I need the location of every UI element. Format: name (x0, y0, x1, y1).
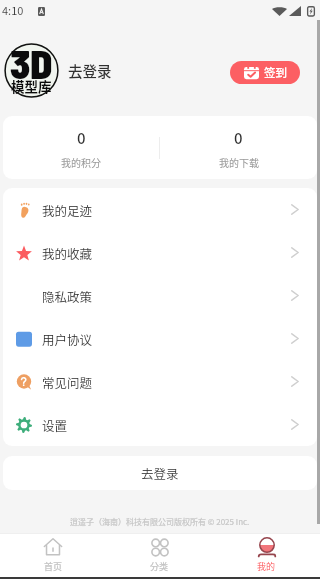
button[interactable]: 去登录 (68, 60, 112, 81)
staticText: 分类 (150, 560, 169, 573)
staticText: 常见问题 (42, 373, 93, 391)
staticText: 隐私政策 (42, 287, 93, 305)
staticText: 我的 (257, 560, 276, 573)
staticText: 我的下载 (219, 155, 259, 169)
button[interactable]: 隐私政策 (3, 274, 317, 317)
staticText: 去登录 (141, 464, 179, 482)
staticText: 我的收藏 (42, 244, 93, 262)
staticText: 我的足迹 (42, 201, 93, 219)
staticText: 签到 (264, 64, 287, 81)
button[interactable]: 首页 (0, 534, 106, 577)
staticText: 用户协议 (42, 330, 93, 348)
staticText: 0 (77, 127, 86, 149)
staticText: 首页 (44, 560, 63, 573)
staticText: 0 (234, 127, 243, 149)
button[interactable]: 用户协议 (3, 317, 317, 360)
button[interactable]: 0 (160, 116, 317, 179)
button[interactable]: 0 (3, 116, 159, 179)
staticText: 设置 (42, 416, 68, 434)
button[interactable]: 常见问题 (3, 360, 317, 403)
button[interactable]: 签到 (230, 61, 300, 84)
button[interactable]: 分类 (106, 534, 213, 577)
button[interactable]: 设置 (3, 403, 317, 446)
staticText: 4:10 (2, 2, 24, 18)
staticText: 我的积分 (61, 155, 101, 169)
staticText: 逍遥子（海南）科技有限公司版权所有 © 2025 Inc. (70, 516, 250, 528)
staticText: 3D (10, 39, 53, 87)
button[interactable]: 我的收藏 (3, 231, 317, 274)
button[interactable]: 去登录 (3, 456, 317, 490)
staticText: 模型库 (11, 76, 52, 96)
button[interactable]: 我的 (213, 534, 320, 577)
button[interactable]: 我的足迹 (3, 188, 317, 231)
